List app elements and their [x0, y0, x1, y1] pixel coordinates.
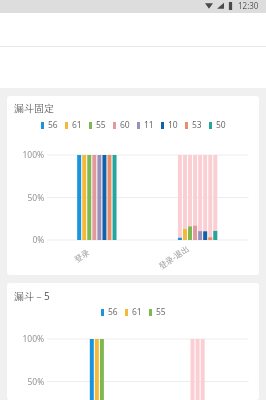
staticText: 53 [192, 119, 202, 131]
staticText: 漏斗－5 [14, 289, 50, 303]
staticText: 60 [120, 119, 130, 131]
staticText: 61 [132, 306, 142, 318]
staticText: 55 [96, 119, 106, 131]
staticText: 55 [156, 306, 166, 318]
button[interactable]: 漏斗－5 [7, 283, 259, 400]
button[interactable]: 漏斗固定 [7, 96, 259, 275]
staticText: 56 [48, 119, 58, 131]
staticText: 10 [168, 119, 178, 131]
staticText: 11 [144, 119, 154, 131]
staticText: 12:30 [238, 0, 259, 11]
staticText: 50 [216, 119, 226, 131]
staticText: 漏斗固定 [14, 102, 54, 115]
staticText: 61 [72, 119, 82, 131]
staticText: 56 [108, 306, 118, 318]
